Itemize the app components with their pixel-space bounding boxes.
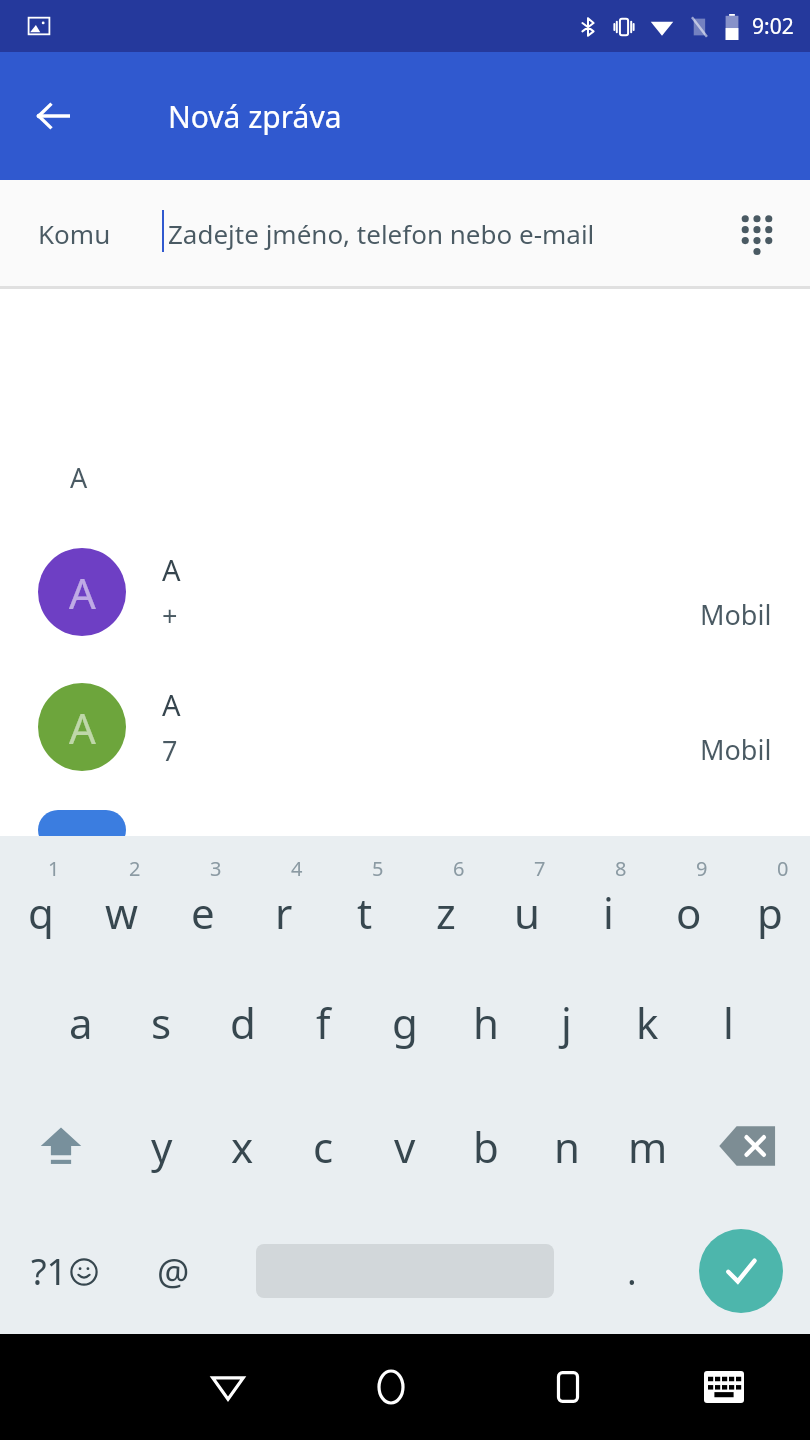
staticText: b xyxy=(473,1118,499,1175)
button[interactable]: Done xyxy=(672,1208,810,1334)
button[interactable]: b xyxy=(445,1084,526,1208)
button[interactable]: 5 xyxy=(324,836,405,960)
staticText: . xyxy=(627,1247,637,1296)
button[interactable]: v xyxy=(364,1084,445,1208)
staticText: w xyxy=(105,884,139,941)
button[interactable]: g xyxy=(364,960,445,1084)
staticText: Mobil xyxy=(700,596,772,633)
staticText: j xyxy=(561,994,572,1051)
staticText: 9 xyxy=(696,855,708,882)
staticText: Komu xyxy=(38,216,111,251)
button[interactable]: y xyxy=(121,1084,202,1208)
staticText: u xyxy=(514,884,540,941)
staticText: v xyxy=(394,1118,416,1175)
staticText: 1 xyxy=(48,855,60,882)
button[interactable]: s xyxy=(121,960,202,1084)
staticText: s xyxy=(151,994,172,1051)
staticText: d xyxy=(230,994,256,1051)
staticText: l xyxy=(723,994,734,1051)
staticText: y xyxy=(151,1118,173,1175)
staticText: 4 xyxy=(291,855,303,882)
button[interactable]: 9 xyxy=(648,836,729,960)
staticText: o xyxy=(676,884,702,941)
button[interactable]: Recents xyxy=(479,1334,656,1440)
button[interactable]: A xyxy=(0,659,810,794)
staticText: Zadejte jméno, telefon nebo e-mail xyxy=(168,216,595,251)
staticText: f xyxy=(316,994,331,1051)
staticText: A xyxy=(69,564,96,621)
button[interactable]: 8 xyxy=(567,836,648,960)
staticText: h xyxy=(473,994,499,1051)
staticText: x xyxy=(231,1118,254,1175)
staticText: 9:02 xyxy=(752,12,794,41)
button[interactable]: l xyxy=(688,960,769,1084)
staticText: A xyxy=(69,699,96,756)
button[interactable]: Backspace xyxy=(688,1084,810,1208)
staticText: c xyxy=(313,1118,334,1175)
button[interactable]: 7 xyxy=(486,836,567,960)
button[interactable]: Home xyxy=(302,1334,479,1440)
staticText: r xyxy=(275,884,293,941)
button[interactable]: n xyxy=(526,1084,607,1208)
button[interactable]: 0 xyxy=(729,836,810,960)
button[interactable]: 3 xyxy=(162,836,243,960)
staticText: A xyxy=(70,459,88,496)
staticText: e xyxy=(191,884,215,941)
staticText: Nová zpráva xyxy=(168,96,342,137)
button[interactable]: m xyxy=(607,1084,688,1208)
button[interactable]: Zadejte jméno, telefon nebo e-mail xyxy=(168,216,700,251)
button[interactable]: 6 xyxy=(405,836,486,960)
staticText: Mobil xyxy=(700,731,772,768)
button[interactable]: Back xyxy=(22,85,84,147)
button[interactable]: a xyxy=(40,960,121,1084)
staticText: 6 xyxy=(453,855,465,882)
staticText: m xyxy=(628,1118,668,1175)
button[interactable]: Switch keyboard xyxy=(656,1334,792,1440)
staticText: t xyxy=(357,884,373,941)
button[interactable]: 4 xyxy=(243,836,324,960)
button[interactable]: A xyxy=(0,524,810,659)
button[interactable]: c xyxy=(283,1084,364,1208)
button[interactable]: j xyxy=(526,960,607,1084)
staticText: k xyxy=(636,994,659,1051)
staticText: ?1 xyxy=(31,1247,68,1296)
staticText: a xyxy=(69,994,93,1051)
button[interactable]: ?1 xyxy=(0,1208,129,1334)
button[interactable]: d xyxy=(202,960,283,1084)
button[interactable]: Dialpad xyxy=(726,202,788,264)
button[interactable]: Space xyxy=(218,1208,591,1334)
staticText: 3 xyxy=(210,855,222,882)
button[interactable]: 1 xyxy=(0,836,81,960)
staticText: p xyxy=(757,884,783,941)
button[interactable]: f xyxy=(283,960,364,1084)
button[interactable]: k xyxy=(607,960,688,1084)
button[interactable]: Shift xyxy=(0,1084,121,1208)
staticText: @ xyxy=(157,1247,190,1296)
staticText: 7 xyxy=(534,855,546,882)
button[interactable]: @ xyxy=(129,1208,218,1334)
staticText: n xyxy=(554,1118,580,1175)
button[interactable]: . xyxy=(591,1208,672,1334)
staticText: g xyxy=(392,994,418,1051)
staticText: 0 xyxy=(777,855,789,882)
staticText: z xyxy=(436,884,456,941)
staticText: i xyxy=(603,884,614,941)
staticText: 5 xyxy=(372,855,384,882)
staticText: q xyxy=(28,884,54,941)
button[interactable]: Back xyxy=(153,1334,302,1440)
button[interactable]: 2 xyxy=(81,836,162,960)
staticText: 8 xyxy=(615,855,627,882)
button[interactable]: h xyxy=(445,960,526,1084)
staticText: 2 xyxy=(129,855,141,882)
button[interactable]: x xyxy=(202,1084,283,1208)
